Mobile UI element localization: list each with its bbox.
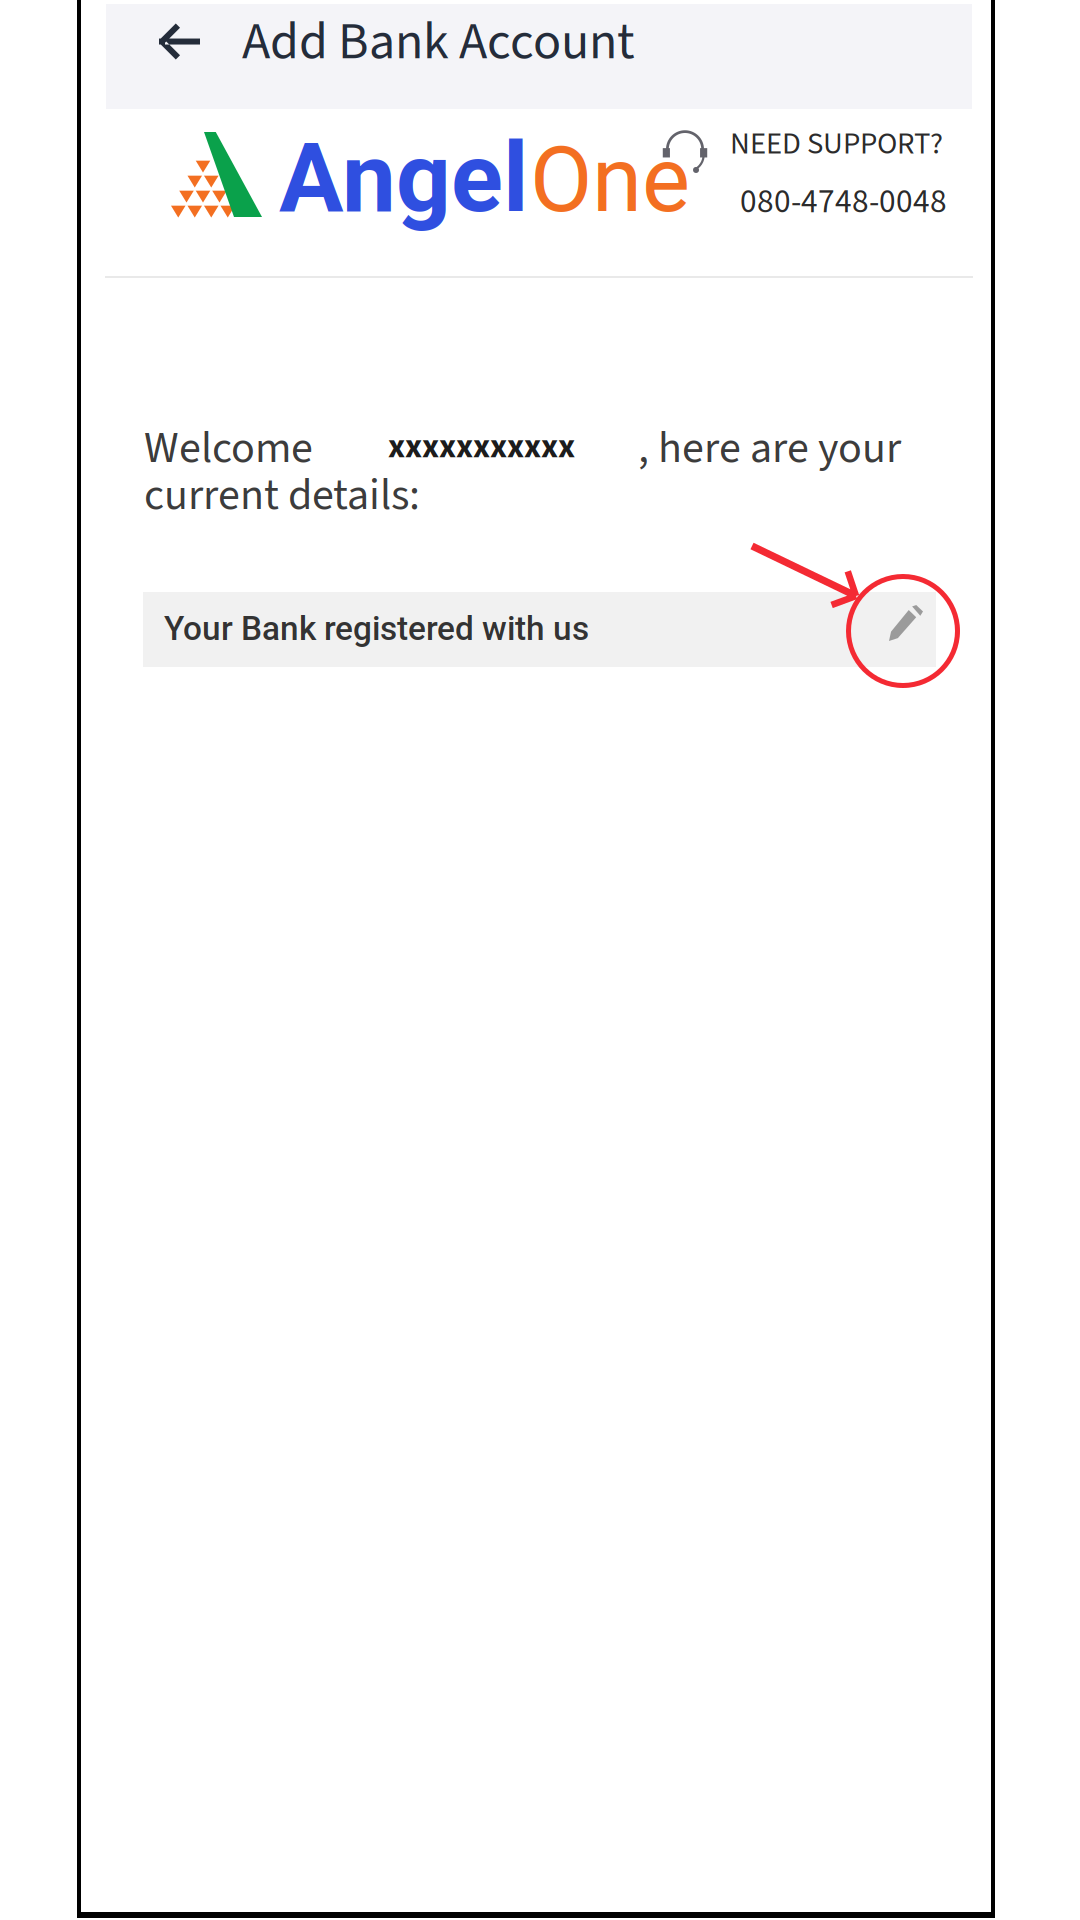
- staticText: Angel: [279, 122, 528, 234]
- staticText: xxxxxxxxxxx: [388, 423, 575, 470]
- button[interactable]: Back: [106, 4, 972, 109]
- staticText: Your Bank registered with us: [164, 609, 589, 648]
- button[interactable]: Your Bank registered with us: [143, 592, 936, 667]
- staticText: Add Bank Account: [242, 5, 635, 79]
- staticText: 080-4748-0048: [740, 178, 947, 225]
- staticText: current details:: [144, 464, 420, 527]
- staticText: Welcome: [144, 417, 313, 480]
- staticText: , here are your: [638, 417, 901, 480]
- staticText: NEED SUPPORT?: [730, 122, 943, 166]
- staticText: One: [530, 127, 690, 233]
